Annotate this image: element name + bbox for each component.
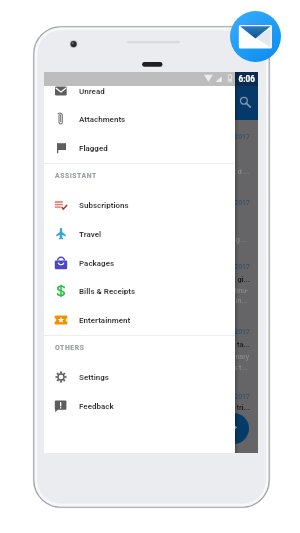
staticText: Travel — [79, 230, 102, 239]
staticText: , 2017 — [174, 328, 250, 338]
button[interactable]: Entertainment — [44, 306, 235, 335]
staticText: out of the ordinary — [114, 352, 249, 362]
staticText: and a visit d ... — [114, 167, 249, 177]
staticText: Attachments — [79, 115, 126, 124]
staticText: about our continu- — [114, 286, 248, 296]
button[interactable]: Packages — [44, 249, 235, 278]
staticText: Unread — [79, 87, 105, 96]
staticText: , 2017 — [174, 263, 250, 273]
button[interactable]: Subscriptions — [44, 191, 235, 220]
button[interactable]: Compose — [218, 413, 249, 444]
staticText: Feedback — [79, 402, 114, 411]
staticText: Bills & Receipts — [79, 287, 136, 296]
staticText: 6:06 — [44, 74, 255, 84]
staticText: Subscriptions — [79, 201, 129, 210]
button[interactable]: Email app — [230, 11, 281, 62]
staticText: and plus t... — [114, 363, 247, 373]
staticText: Settings — [79, 373, 109, 382]
staticText: Flagged — [79, 144, 108, 153]
staticText: have been in... — [114, 296, 247, 306]
staticText: , 2017 — [174, 199, 250, 209]
button[interactable]: Search — [228, 87, 258, 117]
staticText: ASSISTANT — [55, 172, 97, 180]
staticText: we need ta... — [114, 340, 250, 350]
staticText: Entertainment — [79, 316, 131, 325]
button[interactable]: Settings — [44, 363, 235, 392]
button[interactable]: Attachments — [44, 105, 235, 134]
button[interactable]: Bills & Receipts — [44, 277, 235, 306]
button[interactable]: Flagged — [44, 134, 235, 163]
staticText: , 2017 — [174, 133, 250, 143]
staticText: your flight gi... — [114, 275, 250, 285]
staticText: , 2017 — [174, 393, 250, 403]
button[interactable]: Feedback — [44, 392, 235, 421]
staticText: your recent order — [114, 156, 231, 166]
staticText: keep reading ... — [114, 235, 247, 245]
button[interactable]: Unread — [44, 77, 235, 106]
staticText: OTHERS — [55, 344, 85, 352]
button[interactable]: Travel — [44, 220, 235, 249]
staticText: Packages — [79, 259, 115, 268]
staticText: about your tri... — [114, 403, 250, 413]
